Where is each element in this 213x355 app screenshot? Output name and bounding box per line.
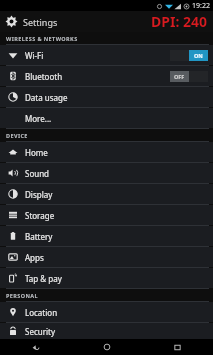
button[interactable]: Sound [0,163,213,183]
staticText: Settings [23,16,58,28]
staticText: Storage [25,210,55,221]
staticText: Tap & pay [25,273,62,284]
button[interactable]: Home [71,339,142,355]
button[interactable]: Home [0,142,213,162]
staticText: OFF [174,73,185,80]
button[interactable]: Apps [0,247,213,267]
staticText: PERSONAL [6,292,39,299]
staticText: 19:22 [192,1,210,11]
staticText: More... [25,113,52,124]
button[interactable]: Tap & pay [0,268,213,288]
staticText: Apps [25,252,44,263]
button[interactable]: Recents [142,339,213,355]
staticText: WIRELESS & NETWORKS [6,35,78,42]
staticText: Bluetooth [25,71,63,82]
staticText: DPI: 240 [151,12,207,31]
staticText: ON [194,52,203,59]
button[interactable]: Location [0,302,213,322]
button[interactable]: Battery [0,226,213,246]
button[interactable]: Display [0,184,213,204]
button[interactable]: Switch off [170,71,208,82]
button[interactable]: Storage [0,205,213,225]
staticText: Location [25,307,58,318]
button[interactable]: Security [0,323,213,339]
button[interactable]: Switch on [170,50,208,61]
staticText: DEVICE [6,132,28,139]
staticText: Wi-Fi [25,50,44,61]
button[interactable]: Wi-Fi [0,45,213,65]
staticText: Display [25,189,53,200]
staticText: Battery [25,231,53,242]
button[interactable]: Bluetooth [0,66,213,86]
button[interactable]: Back [0,339,71,355]
button[interactable]: More... [0,108,213,128]
staticText: Security [25,326,56,337]
button[interactable]: Data usage [0,87,213,107]
staticText: Home [25,147,48,158]
staticText: Data usage [25,92,68,103]
staticText: Sound [25,168,50,179]
